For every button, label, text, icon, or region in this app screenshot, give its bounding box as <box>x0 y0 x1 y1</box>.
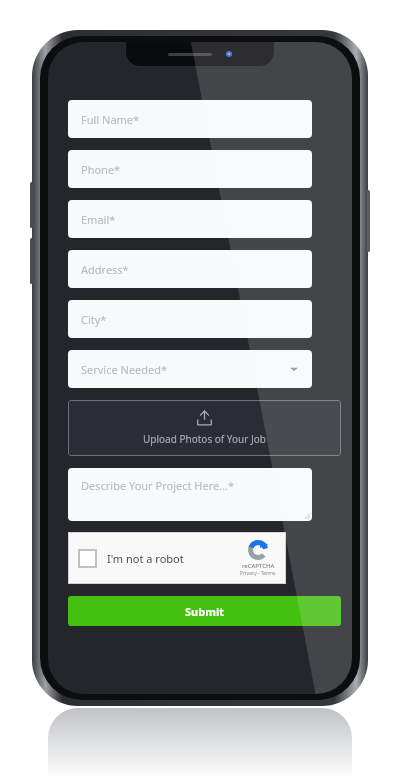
staticText: Upload Photos of Your Job <box>143 432 266 446</box>
button[interactable]: Address* <box>68 250 312 288</box>
staticText: City* <box>81 312 107 327</box>
staticText: reCAPTCHA <box>242 562 275 570</box>
button[interactable]: Email* <box>68 200 312 238</box>
other: Upload photos <box>196 410 213 427</box>
button[interactable]: Upload photos <box>68 400 341 456</box>
button[interactable]: Describe Your Project Here...* <box>68 468 312 521</box>
staticText: Phone* <box>81 162 121 177</box>
button[interactable]: Submit <box>68 596 341 626</box>
button[interactable]: Phone* <box>68 150 312 188</box>
button[interactable]: Full Name* <box>68 100 312 138</box>
other: reCAPTCHA <box>248 540 268 560</box>
staticText: Email* <box>81 212 116 227</box>
button[interactable]: I'm not a robot <box>68 532 286 584</box>
staticText: Submit <box>185 604 224 619</box>
staticText: Privacy - Terms <box>240 570 276 577</box>
staticText: Service Needed* <box>81 362 168 377</box>
button[interactable]: Service Needed* <box>68 350 312 388</box>
staticText: I'm not a robot <box>107 551 184 566</box>
staticText: Full Name* <box>81 112 140 127</box>
staticText: Address* <box>81 262 129 277</box>
button[interactable]: City* <box>68 300 312 338</box>
staticText: Describe Your Project Here...* <box>81 478 235 493</box>
